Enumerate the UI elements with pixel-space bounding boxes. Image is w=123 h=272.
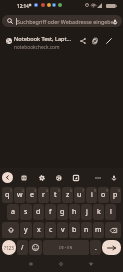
staticText: h (72, 207, 77, 217)
button[interactable]: Backspace (105, 222, 121, 238)
staticText: l (110, 207, 112, 217)
staticText: q (5, 190, 10, 200)
staticText: k (97, 207, 101, 217)
button[interactable]: h (69, 204, 80, 220)
button[interactable]: g (57, 204, 68, 220)
staticText: t (54, 190, 57, 200)
button[interactable]: x (33, 222, 44, 238)
button[interactable]: e (26, 187, 37, 203)
button[interactable]: Close keyboard toolbar (2, 172, 13, 183)
staticText: e (30, 190, 34, 200)
staticText: notebookcheck.com (14, 44, 60, 51)
staticText: f (49, 207, 52, 217)
button[interactable]: Suchbegriff oder Webadresse eingeben (2, 15, 122, 27)
staticText: o (101, 190, 106, 200)
button[interactable]: Voice search (110, 17, 119, 26)
staticText: / (21, 243, 24, 252)
staticText: v (61, 225, 65, 235)
button[interactable]: / (17, 240, 28, 255)
button[interactable]: r (38, 187, 49, 203)
staticText: r (42, 190, 45, 200)
button[interactable]: u (74, 187, 85, 203)
button[interactable]: a (7, 204, 19, 220)
button[interactable]: m (93, 222, 104, 238)
button[interactable]: Recent apps (24, 257, 38, 271)
button[interactable]: Copy (89, 35, 101, 47)
button[interactable]: d (33, 204, 44, 220)
staticText: 12:14 (17, 3, 29, 9)
button[interactable]: Themes (53, 172, 65, 184)
staticText: 5 (58, 188, 60, 193)
staticText: 1 (10, 188, 12, 193)
staticText: n (84, 225, 89, 235)
button[interactable]: c (45, 222, 56, 238)
staticText: c (49, 225, 53, 235)
staticText: g (60, 207, 65, 217)
staticText: z (66, 190, 70, 200)
button[interactable]: Voice input (108, 172, 120, 184)
staticText: x (37, 225, 41, 235)
staticText: b (72, 225, 77, 235)
button[interactable]: j (81, 204, 92, 220)
button[interactable]: k (93, 204, 104, 220)
button[interactable]: Home (54, 257, 68, 271)
staticText: 9 (106, 188, 108, 193)
staticText: 3 (34, 188, 36, 193)
staticText: Notebook Test, Lapt... (14, 35, 72, 43)
button[interactable]: Shift (2, 222, 19, 238)
button[interactable]: . (90, 240, 101, 255)
button[interactable]: q (2, 187, 13, 203)
button[interactable]: ?123 (2, 240, 16, 255)
button[interactable]: z (62, 187, 73, 203)
button[interactable]: o (98, 187, 109, 203)
staticText: m (95, 225, 102, 235)
button[interactable]: Share (77, 35, 89, 47)
button[interactable]: l (105, 204, 116, 220)
button[interactable]: f (45, 204, 56, 220)
staticText: 8 (94, 188, 96, 193)
button[interactable]: b (69, 222, 80, 238)
button[interactable]: Go (102, 240, 121, 255)
button[interactable]: i (86, 187, 97, 203)
button[interactable]: Clipboard (18, 172, 30, 184)
button[interactable]: w (14, 187, 25, 203)
button[interactable]: s (20, 204, 32, 220)
button[interactable]: y (20, 222, 32, 238)
staticText: p (113, 190, 118, 200)
staticText: w (17, 190, 23, 200)
staticText: 6 (70, 188, 72, 193)
staticText: i (91, 190, 93, 200)
staticText: ?123 (4, 245, 14, 251)
staticText: Suchbegriff oder Webadresse eingeben (17, 18, 118, 25)
button[interactable]: n (81, 222, 92, 238)
staticText: d (36, 207, 41, 217)
button[interactable]: Settings (36, 172, 48, 184)
button[interactable]: Back (84, 257, 98, 271)
button[interactable]: More options (92, 172, 104, 184)
staticText: 0 (118, 188, 120, 193)
staticText: 7 (82, 188, 84, 193)
staticText: a (11, 207, 15, 217)
button[interactable]: DE • EN (43, 240, 89, 255)
staticText: y (24, 225, 28, 235)
staticText: u (77, 190, 82, 200)
button[interactable]: Edit (103, 35, 115, 47)
button[interactable]: Emoji (29, 240, 42, 255)
button[interactable]: Resize keyboard (70, 172, 82, 184)
staticText: 4 (46, 188, 48, 193)
staticText: j (86, 207, 88, 217)
staticText: s (24, 207, 28, 217)
button[interactable]: Notebook Test, Lapt... (0, 31, 123, 50)
button[interactable]: p (110, 187, 121, 203)
staticText: 2 (22, 188, 24, 193)
button[interactable]: v (57, 222, 68, 238)
button[interactable]: t (50, 187, 61, 203)
staticText: . (95, 243, 97, 252)
staticText: DE • EN (59, 245, 73, 250)
